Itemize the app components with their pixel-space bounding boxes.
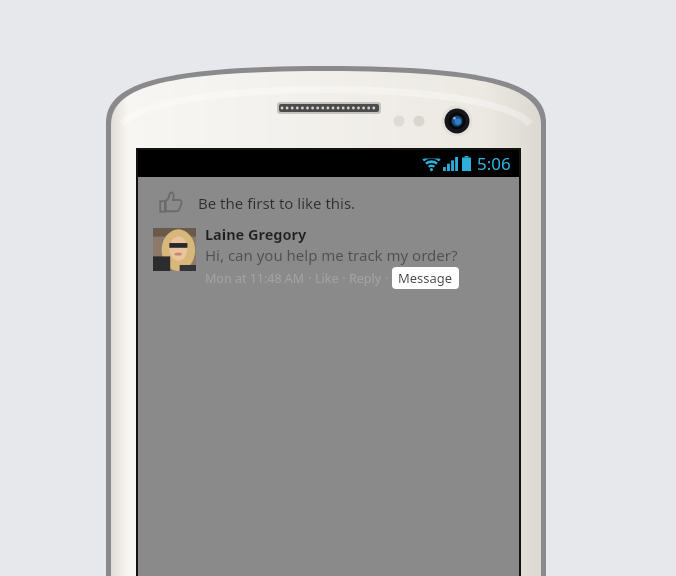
staticText: Mon at 11:48 AM <box>205 270 305 287</box>
button[interactable]: Laine Gregory profile photo <box>153 228 196 271</box>
staticText: Hi, can you help me track my order? <box>205 245 458 265</box>
button[interactable]: Message <box>392 267 459 289</box>
button[interactable]: Like <box>138 177 519 224</box>
staticText: Be the first to like this. <box>198 193 356 213</box>
button[interactable]: Reply <box>349 270 382 287</box>
other: Like <box>158 190 183 215</box>
staticText: Message <box>398 269 453 287</box>
button[interactable]: Laine Gregory <box>205 224 307 244</box>
button[interactable]: Like <box>315 270 339 287</box>
staticText: 5:06 <box>477 152 511 175</box>
